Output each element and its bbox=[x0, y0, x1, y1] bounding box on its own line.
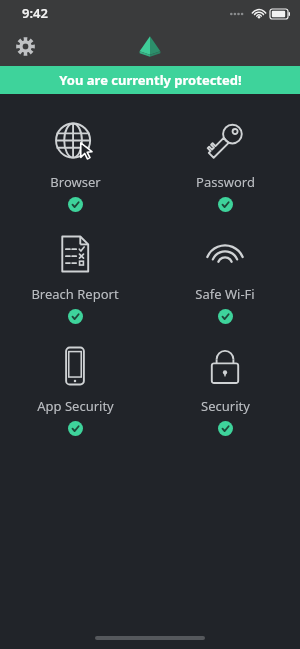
button[interactable]: Security bbox=[150, 340, 300, 438]
staticText: You are currently protected! bbox=[59, 71, 242, 89]
staticText: 9:42 bbox=[22, 4, 48, 22]
button[interactable]: You are currently protected! bbox=[0, 66, 300, 94]
staticText: Safe Wi-Fi bbox=[195, 285, 255, 303]
button[interactable]: Password bbox=[150, 116, 300, 214]
staticText: App Security bbox=[37, 397, 114, 415]
button[interactable]: Safe Wi-Fi bbox=[150, 228, 300, 326]
staticText: Breach Report bbox=[31, 285, 119, 303]
button[interactable]: Settings bbox=[8, 29, 42, 63]
button[interactable]: Browser bbox=[0, 116, 150, 214]
staticText: Password bbox=[196, 173, 255, 191]
button[interactable]: Logo bbox=[130, 26, 170, 66]
staticText: Browser bbox=[50, 173, 101, 191]
button[interactable]: Breach Report bbox=[0, 228, 150, 326]
staticText: Security bbox=[201, 397, 250, 415]
button[interactable]: App Security bbox=[0, 340, 150, 438]
